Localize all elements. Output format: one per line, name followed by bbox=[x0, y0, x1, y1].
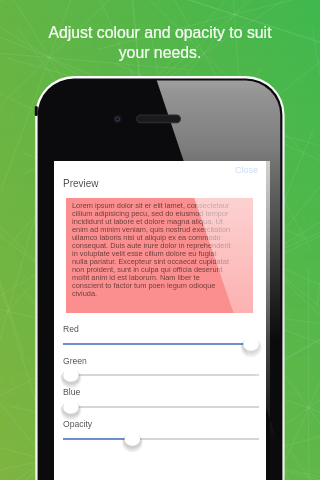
staticText: non proident, sunt in culpa qui officia … bbox=[72, 265, 223, 273]
staticText: incididunt ut labore et dolore magna ali… bbox=[72, 217, 223, 225]
staticText: Adjust colour and opacity to suit your n… bbox=[48, 24, 272, 62]
staticText: civiuda. bbox=[72, 289, 98, 297]
button[interactable] bbox=[54, 396, 266, 418]
staticText: conscient to factor tum poen legum odioq… bbox=[72, 281, 216, 289]
staticText: Preview bbox=[63, 178, 99, 189]
staticText: consequat. Duis aute irure dolor in repr… bbox=[72, 241, 231, 249]
button[interactable] bbox=[54, 364, 266, 386]
staticText: ullamco laboris nisi ut aliquip ex ea co… bbox=[72, 233, 221, 241]
staticText: nulla pariatur. Excepteur sint occaecat … bbox=[72, 257, 229, 265]
staticText: Blue bbox=[63, 387, 81, 397]
staticText: cillium adipisicing pecu, sed do eiusmod… bbox=[72, 209, 229, 217]
staticText: mollit anim id est laborum. Nam liber te bbox=[72, 273, 200, 281]
staticText: Green bbox=[63, 356, 87, 366]
staticText: Opacity bbox=[63, 419, 93, 429]
staticText: enim ad minim veniam, quis nostrud exerc… bbox=[72, 225, 231, 233]
button[interactable] bbox=[54, 333, 266, 355]
staticText: Close bbox=[235, 165, 259, 175]
staticText: Red bbox=[63, 324, 79, 334]
button[interactable]: Close bbox=[232, 162, 262, 178]
button[interactable] bbox=[54, 428, 266, 450]
staticText: Lorem ipsum dolor sit er elit lamet, con… bbox=[72, 201, 230, 209]
staticText: in voluptate velit esse cillum dolore eu… bbox=[72, 249, 217, 257]
